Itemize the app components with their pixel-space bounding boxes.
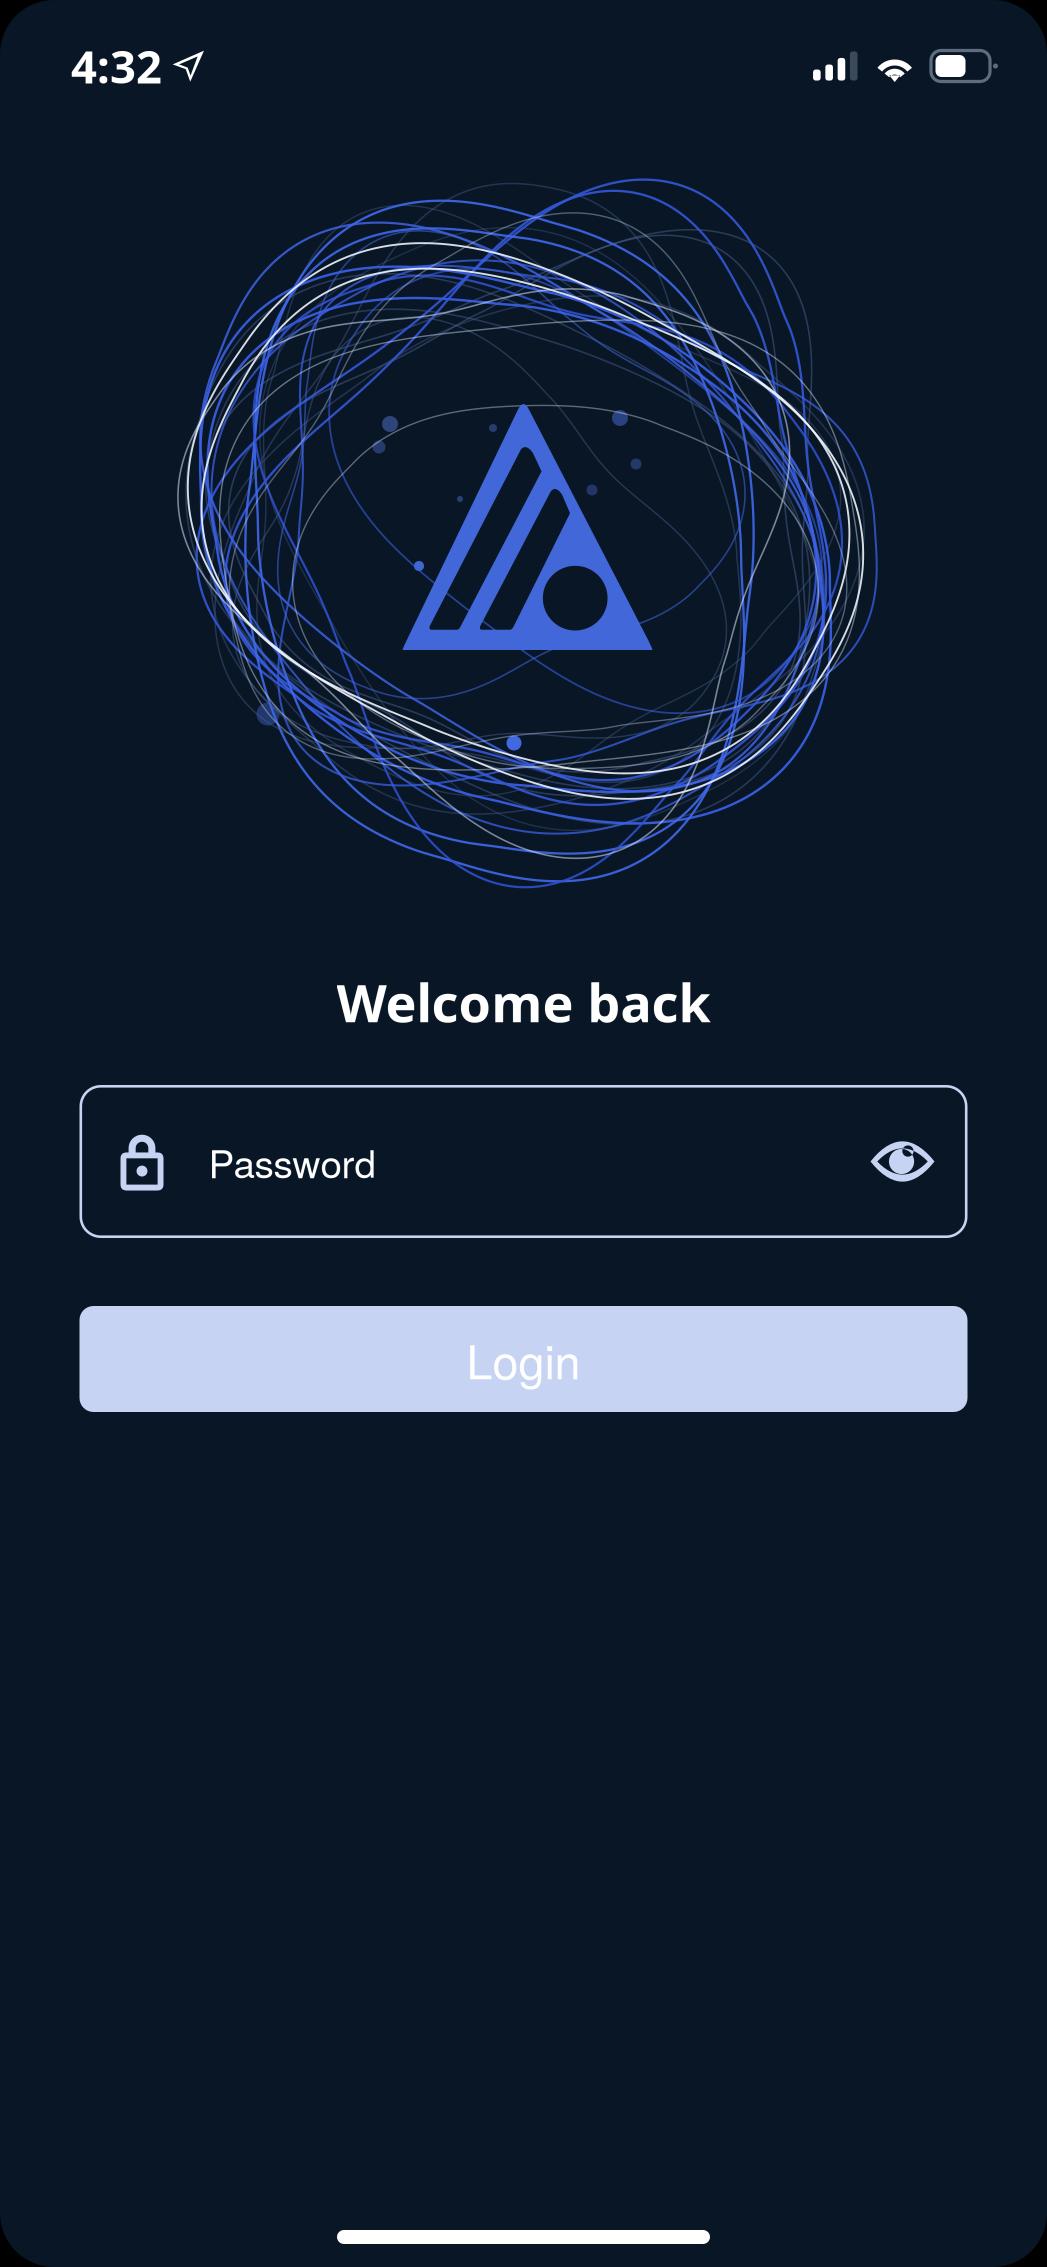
staticText: Login <box>466 1326 580 1392</box>
staticText: 4:32 <box>71 35 162 97</box>
button[interactable]: Login <box>79 1306 967 1412</box>
staticText: Password <box>208 1134 375 1189</box>
button[interactable]: Show password <box>870 1142 934 1180</box>
staticText: Welcome back <box>336 967 710 1037</box>
